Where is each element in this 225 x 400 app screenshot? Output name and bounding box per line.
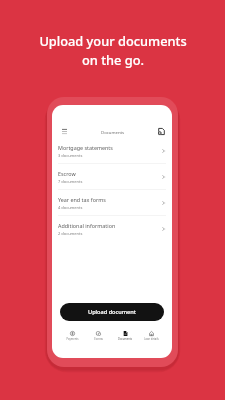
staticText: Additional information (58, 222, 116, 229)
staticText: 7 documents (58, 179, 83, 184)
button[interactable]: Loan details (138, 331, 164, 341)
staticText: Documents (118, 337, 132, 341)
button[interactable]: Search documents (156, 126, 167, 137)
staticText: 2 documents (58, 231, 83, 236)
button[interactable]: Documents (112, 331, 138, 341)
staticText: Mortgage statements (58, 144, 113, 151)
button[interactable]: Escrow (52, 168, 172, 185)
staticText: Escrow (58, 170, 76, 177)
staticText: Loan details (144, 337, 159, 341)
staticText: Escrow (94, 337, 103, 341)
button[interactable]: Year end tax forms (52, 194, 172, 211)
staticText: Upload document (88, 308, 136, 316)
button[interactable]: Menu (59, 126, 70, 137)
staticText: Payments (66, 337, 79, 341)
staticText: Year end tax forms (58, 196, 106, 203)
button[interactable]: Escrow (85, 331, 111, 341)
button[interactable]: Payments (59, 331, 85, 341)
staticText: 3 documents (58, 153, 83, 158)
staticText: 4 documents (58, 205, 83, 210)
button[interactable]: Mortgage statements (52, 142, 172, 159)
staticText: Upload your documents on the go. (39, 32, 187, 69)
button[interactable]: Upload document (60, 303, 164, 321)
staticText: Documents (101, 129, 125, 135)
button[interactable]: Additional information (52, 220, 172, 237)
